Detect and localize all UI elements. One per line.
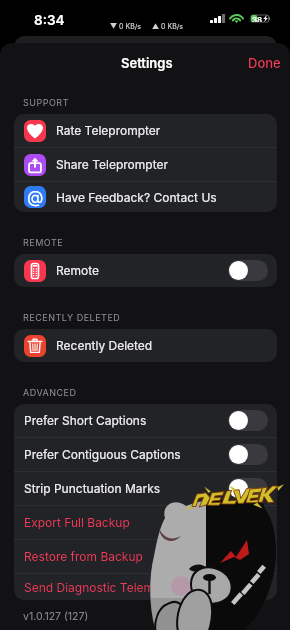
staticText: @ [27,187,44,208]
staticText: 8:34 [34,12,65,28]
staticText: Have Feedback? Contact Us [56,190,268,205]
button[interactable]: Done [237,50,290,76]
staticText: Done [248,55,281,71]
staticText: SUPPORT [23,97,69,108]
staticText: Export Full Backup [24,515,130,530]
button[interactable]: @ [14,182,277,212]
button[interactable]: Prefer Contiguous Captions [14,438,277,471]
staticText: ▲ 0 KB/s [152,22,183,30]
button[interactable]: Remote [14,254,277,287]
staticText: Remote [56,263,228,278]
staticText: Send Diagnostic Telemetry [24,580,177,595]
staticText: 38 [252,15,263,22]
button[interactable]: Recently Deleted [14,329,277,362]
staticText: Prefer Contiguous Captions [24,447,228,462]
button[interactable]: Toggle [228,444,268,465]
staticText: Restore from Backup [24,549,143,564]
button[interactable]: Toggle [228,478,268,499]
staticText: Share Teleprompter [56,157,268,172]
staticText: ADVANCED [23,387,77,398]
staticText: Prefer Short Captions [24,413,228,428]
staticText: REMOTE [23,237,64,248]
staticText: Settings [121,55,173,71]
staticText: Recently Deleted [56,338,268,353]
button[interactable]: Send Diagnostic Telemetry [14,574,277,600]
button[interactable]: Strip Punctuation Marks [14,472,277,505]
button[interactable]: Rate Teleprompter [14,114,277,147]
button[interactable]: Restore from Backup [14,540,277,573]
button[interactable]: Export Full Backup [14,506,277,539]
button[interactable]: Prefer Short Captions [14,404,277,437]
button[interactable]: Toggle [228,410,268,431]
button[interactable]: Share Teleprompter [14,148,277,181]
staticText: RECENTLY DELETED [23,312,121,323]
staticText: ▼ 0 KB/s [110,22,141,30]
staticText: v1.0.127 (127) [23,610,89,623]
staticText: Rate Teleprompter [56,123,268,138]
button[interactable]: Toggle [228,260,268,281]
staticText: Strip Punctuation Marks [24,481,228,496]
